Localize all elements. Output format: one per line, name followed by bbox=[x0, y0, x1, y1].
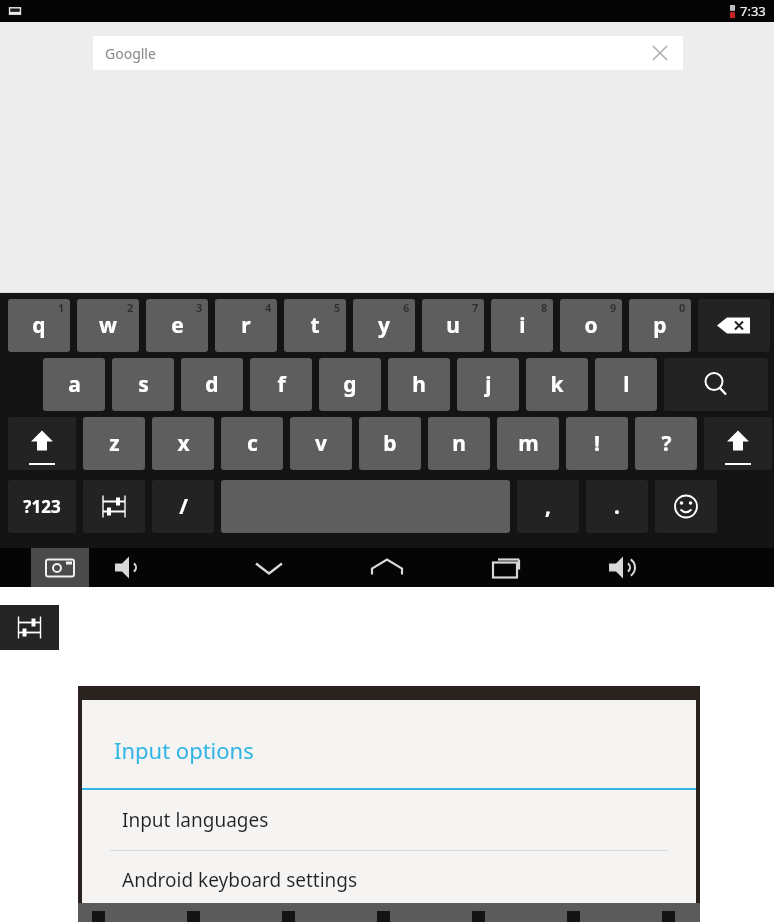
staticText: d bbox=[205, 370, 219, 399]
staticText: ! bbox=[594, 429, 600, 458]
staticText: / bbox=[179, 492, 188, 521]
staticText: y bbox=[378, 311, 390, 340]
staticText: r bbox=[241, 311, 251, 340]
button[interactable]: Home bbox=[361, 548, 413, 587]
button[interactable]: v bbox=[290, 417, 352, 470]
staticText: o bbox=[584, 311, 598, 340]
button[interactable]: Search bbox=[664, 358, 768, 411]
button[interactable]: k bbox=[526, 358, 588, 411]
staticText: 7 bbox=[472, 300, 479, 315]
staticText: f bbox=[277, 370, 286, 399]
staticText: . bbox=[614, 492, 620, 521]
staticText: z bbox=[109, 429, 120, 458]
staticText: ?123 bbox=[23, 495, 61, 518]
staticText: 7:33 bbox=[740, 2, 766, 20]
button[interactable]: Googlle bbox=[93, 36, 683, 70]
staticText: t bbox=[310, 311, 320, 340]
button[interactable]: a bbox=[43, 358, 105, 411]
button[interactable]: o bbox=[560, 299, 622, 352]
staticText: 9 bbox=[610, 300, 617, 315]
button[interactable]: Android keyboard settings bbox=[82, 851, 696, 909]
button[interactable]: g bbox=[319, 358, 381, 411]
staticText: 4 bbox=[265, 300, 272, 315]
button[interactable]: Input options bbox=[83, 480, 145, 533]
button[interactable]: ? bbox=[635, 417, 697, 470]
staticText: h bbox=[412, 370, 426, 399]
staticText: v bbox=[315, 429, 327, 458]
button[interactable]: m bbox=[497, 417, 559, 470]
button[interactable]: s bbox=[112, 358, 174, 411]
staticText: c bbox=[247, 429, 258, 458]
staticText: a bbox=[68, 370, 81, 399]
button[interactable]: Emoji bbox=[655, 480, 717, 533]
staticText: j bbox=[485, 370, 492, 399]
staticText: e bbox=[171, 311, 184, 340]
staticText: m bbox=[518, 429, 539, 458]
button[interactable]: h bbox=[388, 358, 450, 411]
staticText: ? bbox=[661, 429, 672, 458]
button[interactable]: Input options bbox=[0, 605, 59, 650]
staticText: b bbox=[383, 429, 397, 458]
staticText: l bbox=[623, 370, 630, 399]
button[interactable]: j bbox=[457, 358, 519, 411]
button[interactable]: q bbox=[8, 299, 70, 352]
button[interactable]: p bbox=[629, 299, 691, 352]
button[interactable]: Shift bbox=[8, 417, 76, 470]
button[interactable]: y bbox=[353, 299, 415, 352]
button[interactable]: Input languages bbox=[82, 790, 696, 850]
button[interactable]: Recents bbox=[480, 548, 532, 587]
button[interactable]: ! bbox=[566, 417, 628, 470]
staticText: Googlle bbox=[105, 44, 156, 63]
button[interactable]: / bbox=[152, 480, 214, 533]
button[interactable]: l bbox=[595, 358, 657, 411]
staticText: w bbox=[99, 311, 117, 340]
button[interactable]: , bbox=[517, 480, 579, 533]
button[interactable]: Volume up bbox=[598, 548, 650, 587]
button[interactable]: Clear bbox=[649, 42, 671, 64]
button[interactable]: Screenshot bbox=[31, 548, 89, 587]
staticText: k bbox=[550, 370, 564, 399]
staticText: u bbox=[446, 311, 460, 340]
button[interactable]: Hide keyboard bbox=[243, 548, 295, 587]
staticText: n bbox=[452, 429, 466, 458]
button[interactable]: e bbox=[146, 299, 208, 352]
button[interactable]: f bbox=[250, 358, 312, 411]
button[interactable]: b bbox=[359, 417, 421, 470]
staticText: s bbox=[138, 370, 149, 399]
button[interactable]: ?123 bbox=[8, 480, 76, 533]
button[interactable]: n bbox=[428, 417, 490, 470]
staticText: Input options bbox=[114, 735, 254, 765]
staticText: 8 bbox=[541, 300, 548, 315]
staticText: 6 bbox=[403, 300, 410, 315]
staticText: 0 bbox=[679, 300, 686, 315]
staticText: 5 bbox=[334, 300, 341, 315]
staticText: Input languages bbox=[122, 807, 269, 833]
button[interactable]: c bbox=[221, 417, 283, 470]
button[interactable]: . bbox=[586, 480, 648, 533]
button[interactable]: Backspace bbox=[698, 299, 770, 352]
staticText: i bbox=[519, 311, 526, 340]
staticText: 3 bbox=[196, 300, 203, 315]
button[interactable]: x bbox=[152, 417, 214, 470]
button[interactable]: i bbox=[491, 299, 553, 352]
button[interactable]: t bbox=[284, 299, 346, 352]
staticText: p bbox=[653, 311, 667, 340]
staticText: 2 bbox=[127, 300, 134, 315]
button[interactable]: d bbox=[181, 358, 243, 411]
button[interactable]: z bbox=[83, 417, 145, 470]
staticText: q bbox=[32, 311, 46, 340]
button[interactable]: r bbox=[215, 299, 277, 352]
staticText: , bbox=[545, 492, 551, 521]
staticText: Android keyboard settings bbox=[122, 867, 358, 893]
button[interactable]: w bbox=[77, 299, 139, 352]
button[interactable]: u bbox=[422, 299, 484, 352]
button[interactable]: Shift bbox=[704, 417, 772, 470]
staticText: g bbox=[343, 370, 357, 399]
staticText: x bbox=[177, 429, 190, 458]
staticText: 1 bbox=[58, 300, 65, 315]
button[interactable]: Volume down bbox=[104, 548, 156, 587]
